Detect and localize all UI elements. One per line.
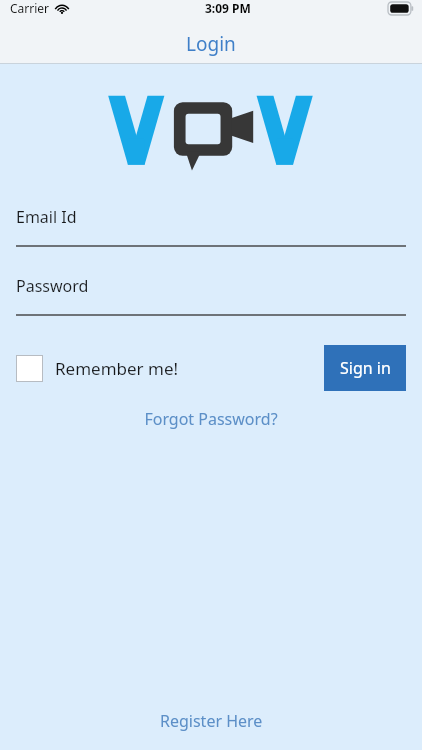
button[interactable]: Remember me! [16,355,179,382]
staticText: Remember me! [55,357,179,380]
button[interactable]: Forgot Password? [134,405,288,433]
staticText: Carrier [10,0,50,16]
staticText: Email Id [16,206,77,228]
button[interactable]: Register Here [148,706,275,736]
staticText: 3:09 PM [205,0,251,16]
staticText: Password [16,275,89,297]
staticText: Login [186,31,236,57]
staticText: Register Here [160,710,263,732]
button[interactable]: Sign in [324,345,406,391]
staticText: Forgot Password? [144,408,278,430]
staticText: Sign in [340,357,391,379]
